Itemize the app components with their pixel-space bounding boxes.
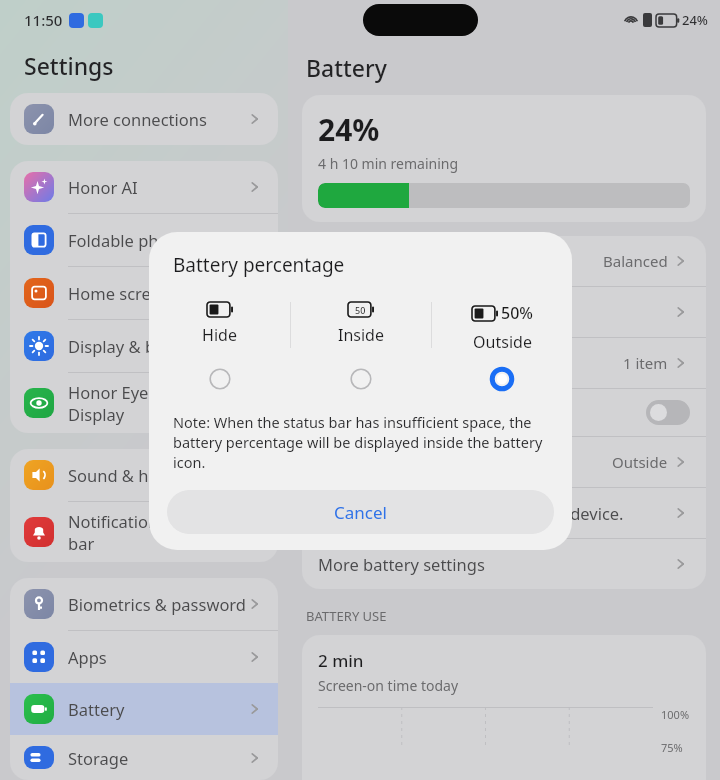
button[interactable] [290, 364, 431, 394]
staticText: Outside [612, 452, 668, 472]
button[interactable]: Hide [149, 302, 290, 348]
button[interactable]: Sleep mode [302, 389, 706, 436]
button[interactable]: Honor AI [10, 161, 278, 213]
staticText: Sleep mode [318, 402, 646, 424]
button[interactable]: Cancel [167, 490, 554, 534]
button[interactable]: Display & brightness [10, 320, 278, 372]
staticText: 11:50 [24, 10, 63, 30]
button[interactable] [431, 364, 572, 394]
button[interactable]: Notification bar [10, 502, 278, 562]
staticText: More connections [68, 108, 248, 130]
button[interactable]: Battery percentage [302, 437, 706, 487]
button[interactable]: Power mode [302, 236, 706, 286]
staticText: 24% [682, 11, 708, 29]
staticText: Storage [68, 747, 248, 769]
staticText: Optimise battery usage for your device. [318, 502, 674, 524]
button[interactable]: Storage [10, 735, 278, 780]
staticText: More battery settings [318, 553, 674, 575]
button[interactable]: Power-intensive apps [302, 287, 706, 337]
staticText: Balanced [603, 251, 668, 271]
staticText: Inside [338, 324, 384, 346]
staticText: Battery [306, 52, 387, 83]
staticText: Screen-on time today [318, 676, 459, 695]
button[interactable]: Battery [10, 683, 278, 735]
staticText: Battery percentage [318, 451, 612, 473]
button[interactable] [149, 364, 290, 394]
button[interactable]: More battery settings [302, 539, 706, 589]
staticText: 50% [501, 302, 533, 324]
staticText: 2 min [318, 649, 364, 672]
staticText: Power-intensive apps [318, 301, 674, 323]
staticText: Power mode [318, 250, 603, 272]
staticText: Home screen [68, 282, 248, 304]
staticText: 50 [355, 304, 366, 316]
button[interactable]: App launch [302, 338, 706, 388]
staticText: Apps [68, 646, 248, 668]
staticText: Outside [473, 331, 532, 348]
button[interactable]: 50 [291, 302, 431, 348]
staticText: 1 item [623, 353, 668, 373]
staticText: Display & brightness [68, 335, 248, 357]
button[interactable]: Home screen [10, 267, 278, 319]
staticText: Note: When the status bar has insufficie… [173, 412, 548, 472]
staticText: 4 h 10 min remaining [318, 154, 459, 173]
staticText: Cancel [334, 501, 387, 524]
staticText: Battery [68, 698, 248, 720]
staticText: 100% [661, 707, 690, 722]
staticText: App launch [318, 352, 623, 374]
button[interactable]: Foldable phones [10, 214, 278, 266]
other: Sleep mode toggle [646, 400, 690, 425]
staticText: Biometrics & password [68, 593, 248, 615]
staticText: Foldable phones [68, 229, 248, 251]
staticText: 24% [318, 109, 380, 150]
staticText: Honor AI [68, 176, 248, 198]
staticText: BATTERY USE [306, 607, 387, 625]
staticText: Sound & haptics [68, 464, 248, 486]
staticText: Hide [202, 324, 237, 346]
button[interactable]: Optimise battery usage for your device. [302, 488, 706, 538]
staticText: Notification bar [68, 510, 248, 554]
staticText: Honor Eye Display [68, 381, 248, 425]
staticText: 75% [661, 740, 683, 755]
button[interactable]: Biometrics & password [10, 578, 278, 630]
button[interactable]: Honor Eye Display [10, 373, 278, 433]
button[interactable]: Sound & haptics [10, 449, 278, 501]
button[interactable]: 50% [432, 302, 572, 348]
button[interactable]: More connections [10, 93, 278, 145]
button[interactable]: Apps [10, 631, 278, 683]
staticText: Battery percentage [173, 252, 345, 278]
staticText: Settings [24, 50, 114, 81]
